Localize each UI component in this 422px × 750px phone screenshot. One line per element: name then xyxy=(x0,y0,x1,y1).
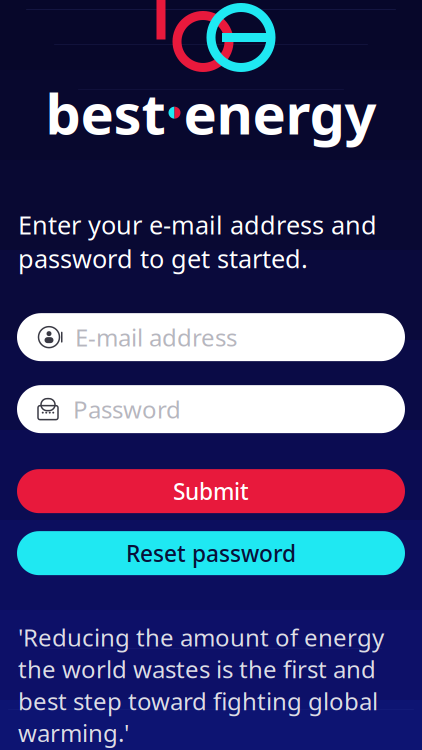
staticText: Reset password xyxy=(126,538,296,568)
button[interactable]: Submit xyxy=(17,469,405,513)
staticText: Password xyxy=(73,393,181,425)
staticText: Submit xyxy=(173,476,249,506)
staticText: energy xyxy=(183,75,376,150)
button[interactable]: E-mail address xyxy=(17,313,405,361)
staticText: E-mail address xyxy=(75,321,237,353)
button[interactable]: Reset password xyxy=(17,531,405,575)
staticText: best xyxy=(45,75,165,150)
staticText: Enter your e-mail address and password t… xyxy=(18,208,377,275)
staticText: 'Reducing the amount of energy the world… xyxy=(18,621,384,749)
button[interactable]: Password xyxy=(17,385,405,433)
